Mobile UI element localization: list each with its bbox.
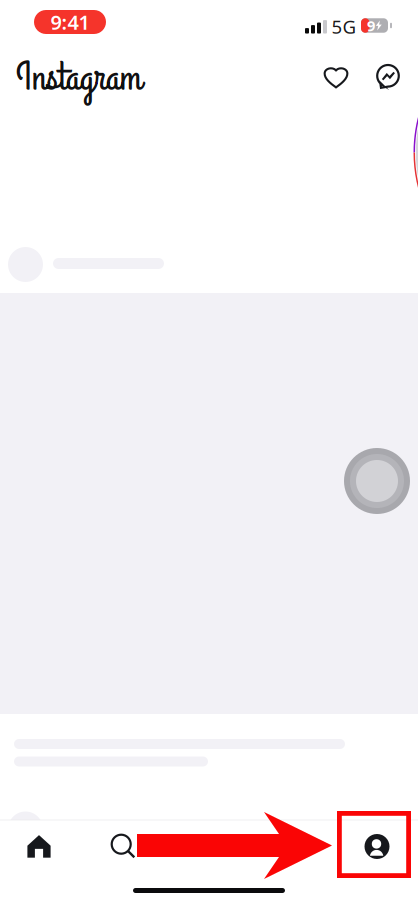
button[interactable]: Create — [179, 821, 239, 871]
staticText: 5G — [331, 14, 356, 39]
button[interactable]: Story — [0, 0, 418, 908]
button[interactable]: Profile — [347, 821, 407, 871]
staticText: Instagram — [16, 51, 142, 105]
button[interactable]: Search — [93, 821, 153, 871]
button[interactable]: Reels — [265, 821, 325, 871]
staticText: 9:41 — [50, 9, 89, 35]
button[interactable]: Activity — [314, 55, 358, 99]
button[interactable]: Instagram — [16, 56, 166, 100]
button[interactable]: Direct messages — [366, 55, 410, 99]
staticText: 9 — [367, 16, 375, 35]
button[interactable]: Home — [9, 821, 69, 871]
